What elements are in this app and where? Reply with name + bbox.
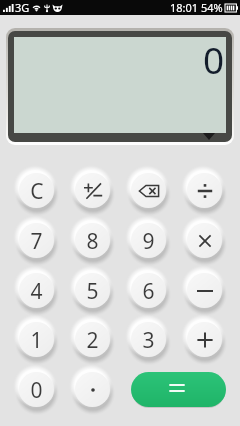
staticText: C [30, 177, 44, 206]
button[interactable]: 9 [131, 223, 166, 258]
button[interactable]: Divide [187, 173, 222, 208]
button[interactable]: 7 [19, 223, 54, 258]
button[interactable]: Multiply [187, 223, 222, 258]
staticText: 5 [86, 277, 99, 306]
staticText: 0 [203, 34, 225, 84]
staticText: 9 [142, 227, 155, 256]
button[interactable]: Plus [187, 322, 222, 357]
button[interactable]: Equals [131, 372, 226, 407]
staticText: 3 [142, 326, 155, 355]
button[interactable]: 4 [19, 273, 54, 308]
button[interactable]: 0 [19, 372, 54, 407]
button[interactable]: C [19, 173, 54, 208]
button[interactable]: Backspace [131, 173, 166, 208]
button[interactable]: Minus [187, 273, 222, 308]
staticText: 2 [86, 326, 99, 355]
button[interactable]: Decimal point [75, 372, 110, 407]
button[interactable]: Plus minus [75, 173, 110, 208]
staticText: 8 [86, 227, 99, 256]
button[interactable]: 6 [131, 273, 166, 308]
staticText: 4 [30, 277, 43, 306]
button[interactable]: 8 [75, 223, 110, 258]
staticText: 7 [30, 227, 43, 256]
other: Show history [203, 133, 215, 140]
staticText: 6 [142, 277, 155, 306]
button[interactable]: 1 [19, 322, 54, 357]
button[interactable]: 3 [131, 322, 166, 357]
staticText: 3G [15, 0, 30, 15]
button[interactable]: 5 [75, 273, 110, 308]
button[interactable]: 2 [75, 322, 110, 357]
staticText: 0 [30, 376, 43, 405]
staticText: 1 [30, 326, 43, 355]
staticText: 18:01 54% [170, 0, 223, 15]
